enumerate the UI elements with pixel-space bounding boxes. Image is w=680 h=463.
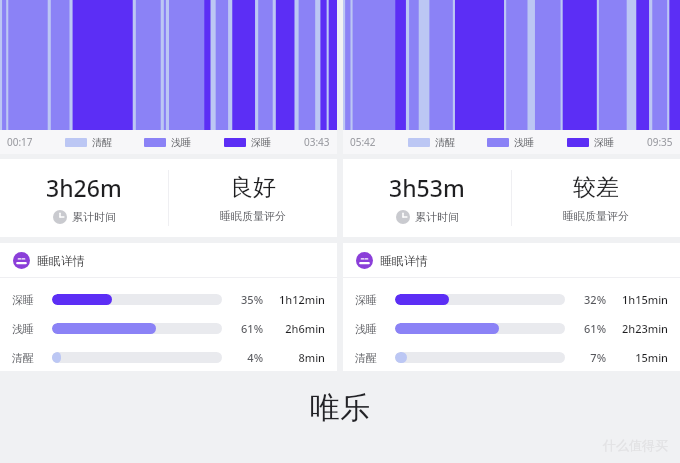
staticText: 32% — [574, 292, 606, 307]
staticText: 什么值得买 — [603, 437, 668, 453]
staticText: 清醒 — [435, 136, 455, 149]
other: Duration — [53, 210, 67, 224]
staticText: 05:42 — [350, 135, 376, 149]
staticText: 深睡 — [355, 293, 389, 307]
staticText: 清醒 — [12, 351, 46, 365]
button[interactable]: 3h26m — [0, 159, 168, 237]
staticText: 15min — [614, 350, 668, 365]
staticText: 61% — [574, 321, 606, 336]
staticText: 7% — [574, 350, 606, 365]
staticText: 浅睡 — [12, 322, 46, 336]
staticText: 累计时间 — [415, 210, 459, 224]
staticText: 睡眠详情 — [37, 253, 85, 268]
staticText: 61% — [231, 321, 263, 336]
staticText: 3h26m — [46, 172, 122, 203]
staticText: 清醒 — [92, 136, 112, 149]
staticText: 2h23min — [614, 321, 668, 336]
staticText: 03:43 — [304, 135, 330, 149]
button[interactable]: 3h53m — [343, 159, 511, 237]
other: Sleep details — [356, 252, 373, 269]
staticText: 浅睡 — [514, 136, 534, 149]
staticText: 深睡 — [594, 136, 614, 149]
button[interactable]: 良好 — [169, 159, 337, 237]
staticText: 09:35 — [647, 135, 673, 149]
staticText: 浅睡 — [355, 322, 389, 336]
button[interactable]: 较差 — [512, 159, 680, 237]
button[interactable]: Sleep details — [0, 243, 337, 277]
staticText: 睡眠详情 — [380, 253, 428, 268]
staticText: 良好 — [230, 173, 276, 202]
staticText: 35% — [231, 292, 263, 307]
staticText: 8min — [271, 350, 325, 365]
staticText: 1h15min — [614, 292, 668, 307]
staticText: 清醒 — [355, 351, 389, 365]
staticText: 1h12min — [271, 292, 325, 307]
other: Duration — [396, 210, 410, 224]
staticText: 睡眠质量评分 — [220, 209, 286, 223]
button[interactable]: Sleep details — [343, 243, 680, 277]
staticText: 较差 — [573, 173, 619, 202]
staticText: 唯乐 — [310, 389, 370, 427]
staticText: 00:17 — [7, 135, 33, 149]
staticText: 浅睡 — [171, 136, 191, 149]
staticText: 睡眠质量评分 — [563, 209, 629, 223]
other: Sleep details — [13, 252, 30, 269]
staticText: 3h53m — [389, 172, 465, 203]
staticText: 深睡 — [12, 293, 46, 307]
staticText: 深睡 — [251, 136, 271, 149]
staticText: 累计时间 — [72, 210, 116, 224]
staticText: 2h6min — [271, 321, 325, 336]
staticText: 4% — [231, 350, 263, 365]
